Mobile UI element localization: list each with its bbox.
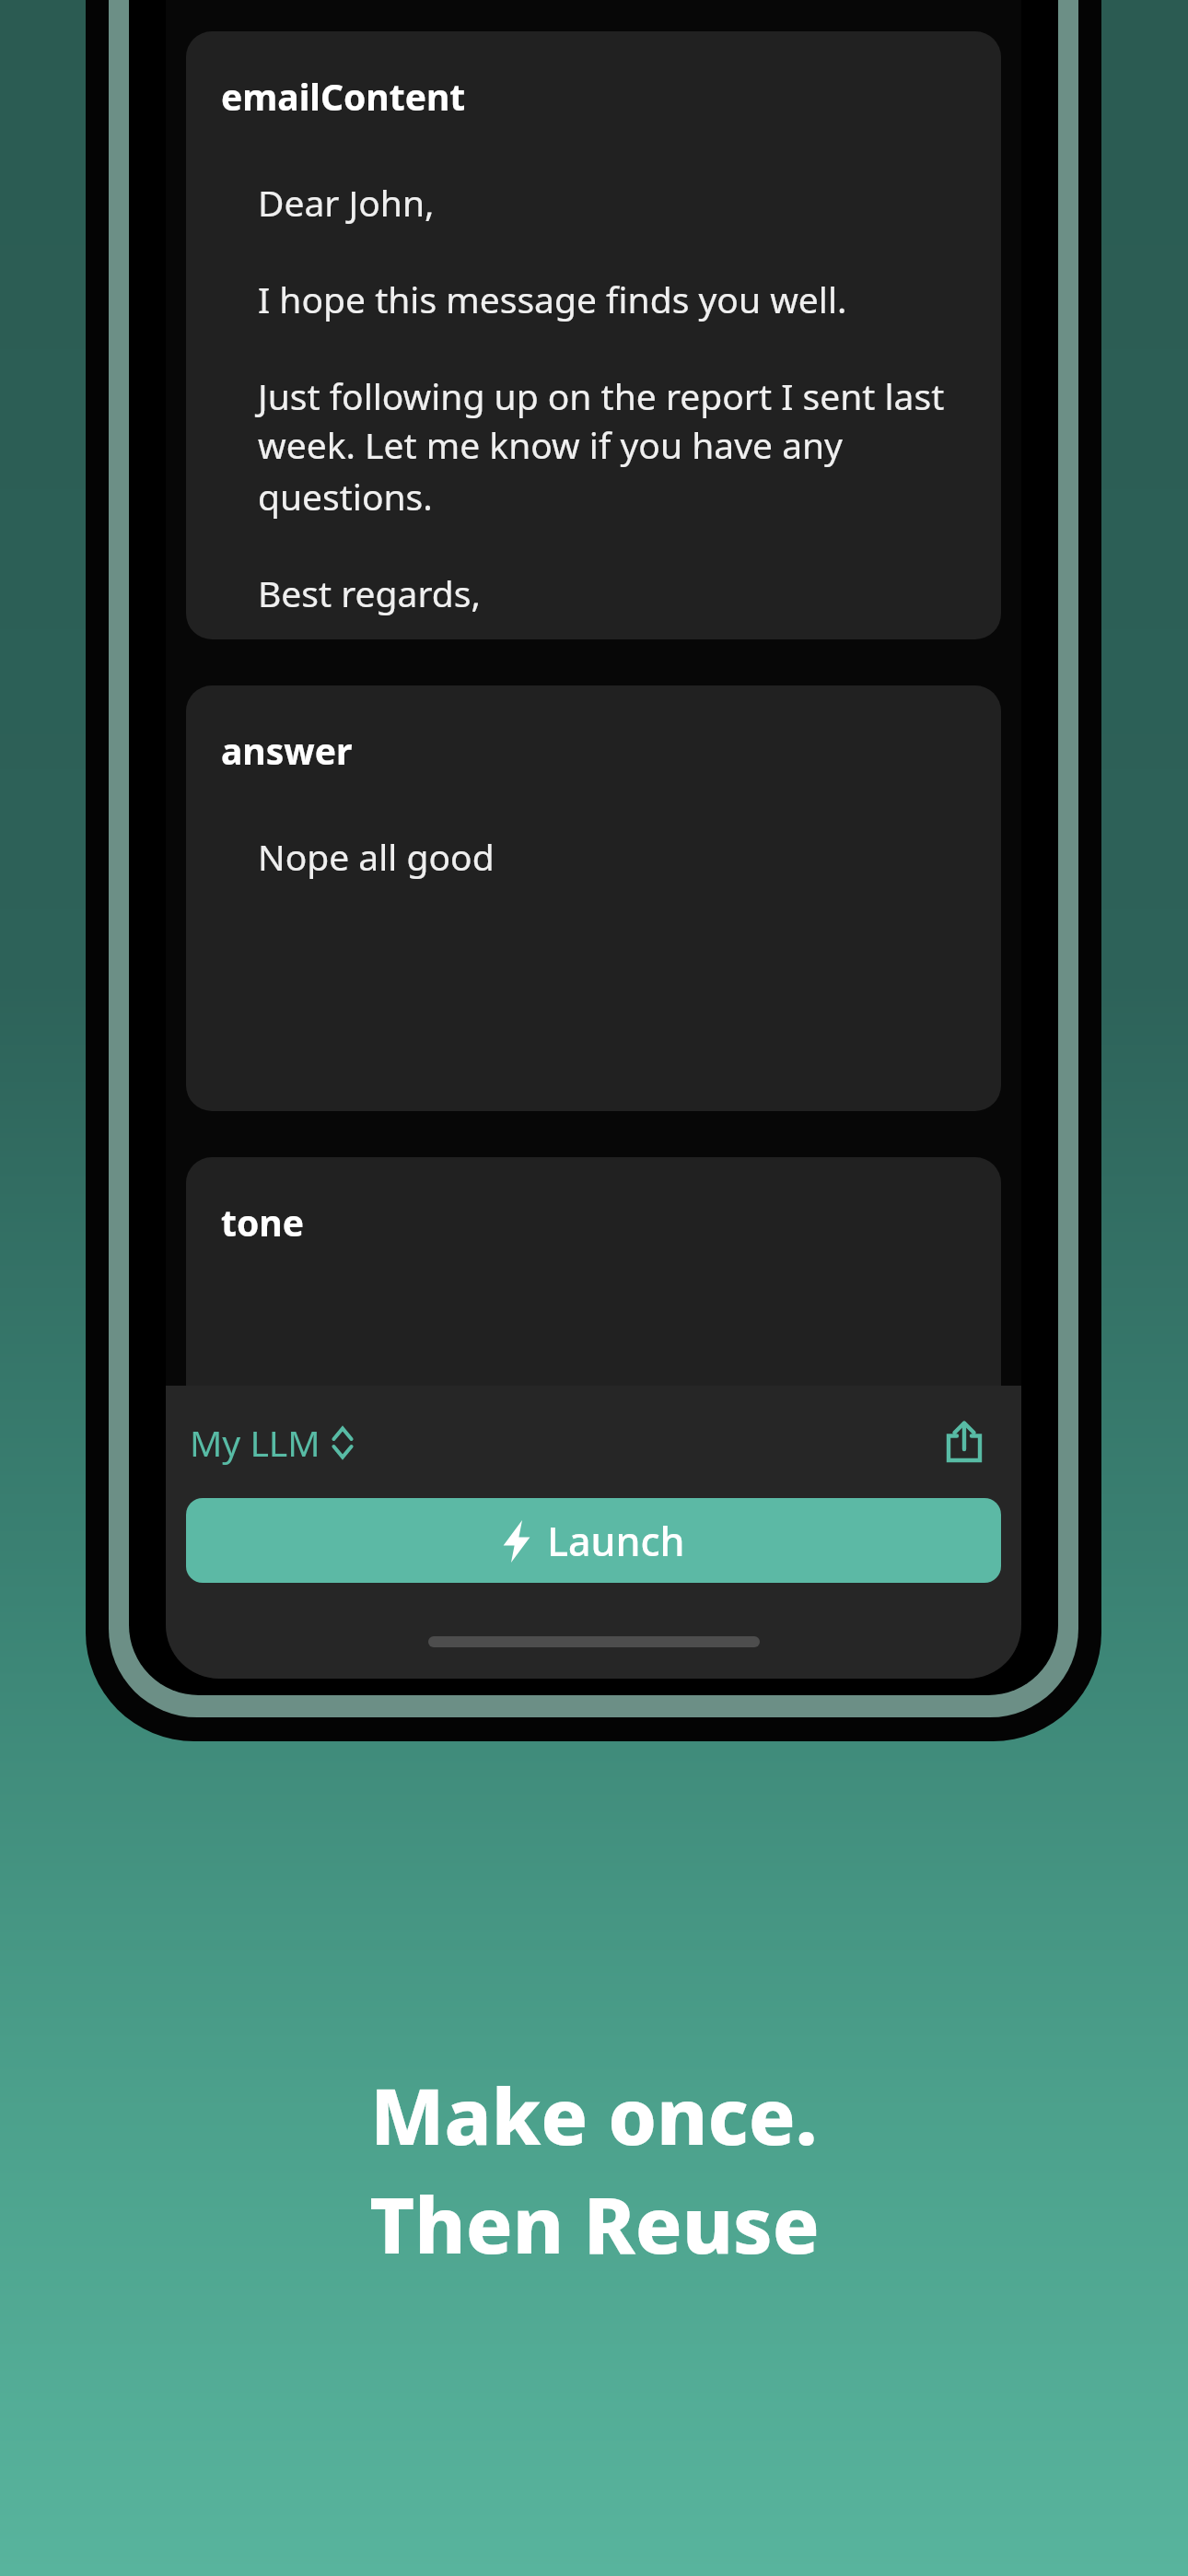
staticText: Dear John, xyxy=(258,178,435,227)
staticText: Then Reuse xyxy=(369,2171,820,2276)
staticText: Just following up on the report I sent l… xyxy=(258,371,945,420)
staticText: tone xyxy=(221,1198,304,1247)
staticText: I hope this message finds you well. xyxy=(258,275,847,323)
staticText: Launch xyxy=(547,1514,685,1568)
button[interactable]: Launch xyxy=(186,1498,1001,1583)
staticText: Nope all good xyxy=(258,832,495,881)
staticText: emailContent xyxy=(221,72,466,121)
staticText: Make once. xyxy=(370,2062,818,2167)
button[interactable]: tone xyxy=(186,1157,1001,1583)
staticText: answer xyxy=(221,726,353,775)
button[interactable]: answer xyxy=(186,685,1001,1111)
staticText: Best regards, xyxy=(258,568,481,617)
button[interactable]: My LLM xyxy=(186,1411,357,1474)
staticText: week. Let me know if you have any questi… xyxy=(258,420,975,521)
button[interactable]: emailContent xyxy=(186,31,1001,639)
staticText: My LLM xyxy=(190,1418,320,1467)
button[interactable]: Share xyxy=(927,1405,1001,1479)
